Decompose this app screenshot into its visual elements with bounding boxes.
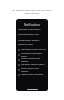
staticText: Recently sent notifications — [18, 42, 46, 47]
button[interactable]: App icon — [16, 47, 48, 52]
staticText: Maps traffic updates — [21, 73, 44, 76]
button[interactable]: Notification history — [16, 37, 48, 42]
staticText: 9:41 — [18, 20, 22, 22]
button[interactable]: App icon — [16, 72, 48, 77]
button[interactable]: App icon — [16, 57, 48, 62]
staticText: 2 hr — [45, 62, 46, 67]
staticText: Messages alerts are on — [21, 48, 46, 51]
staticText: Conversations and bubbles — [18, 32, 46, 37]
button[interactable]: Manage notification settings — [16, 27, 48, 32]
staticText: every session — [24, 11, 40, 14]
button[interactable]: Recently sent notifications — [16, 42, 48, 47]
staticText: Calendar reminders silent — [21, 52, 46, 57]
staticText: Yest — [44, 72, 46, 77]
button[interactable]: App icon — [16, 62, 48, 67]
staticText: Notifications — [24, 23, 40, 27]
staticText: Clock timers and alarms — [21, 67, 46, 72]
staticText: Manage notification settings — [18, 27, 46, 32]
staticText: Photos memories weekly — [21, 57, 46, 62]
staticText: Weather severe alerts — [21, 63, 45, 66]
staticText: To update how often you get alerts — [12, 8, 52, 11]
staticText: Notification history — [18, 38, 40, 41]
button[interactable]: App icon — [16, 67, 48, 72]
button[interactable]: Conversations and bubbles — [16, 32, 48, 37]
button[interactable]: App icon — [16, 52, 48, 57]
